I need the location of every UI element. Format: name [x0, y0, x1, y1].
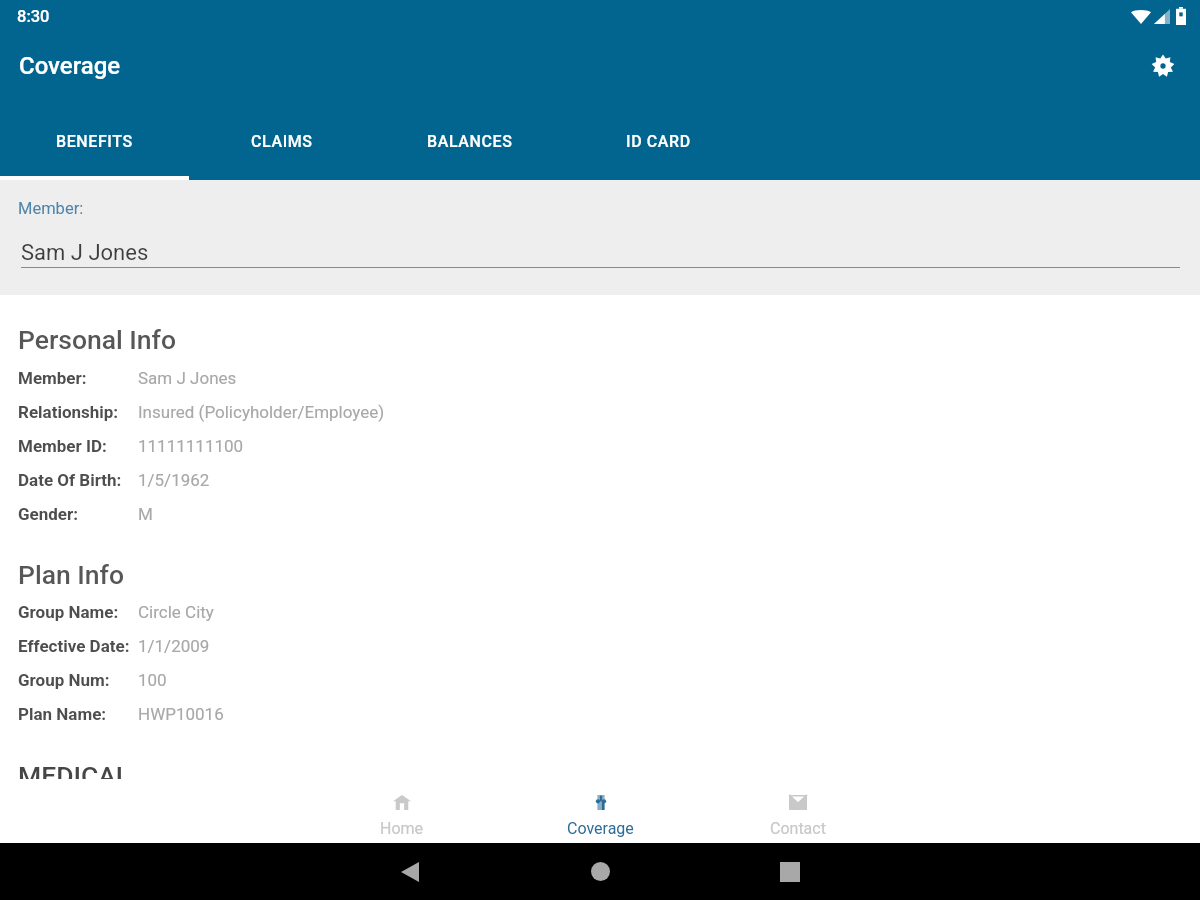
button[interactable]: BALANCES [376, 104, 564, 180]
staticText: Plan Info [18, 559, 124, 590]
button[interactable]: Coverage [501, 779, 699, 843]
staticText: Date Of Birth: [18, 470, 138, 490]
staticText: Member ID: [18, 436, 138, 456]
staticText: Circle City [138, 602, 214, 622]
button[interactable]: Back [315, 843, 505, 900]
staticText: 1/5/1962 [138, 470, 210, 490]
staticText: 1/1/2009 [138, 636, 210, 656]
staticText: Coverage [567, 819, 634, 838]
staticText: 11111111100 [138, 436, 244, 456]
button[interactable]: Home [505, 843, 695, 900]
staticText: Group Num: [18, 670, 138, 690]
button[interactable]: ID CARD [564, 104, 752, 180]
staticText: HWP10016 [138, 704, 224, 724]
button[interactable]: CLAIMS [188, 104, 376, 180]
staticText: Home [380, 819, 424, 838]
staticText: Plan Name: [18, 704, 138, 724]
staticText: Sam J Jones [138, 368, 237, 388]
staticText: CLAIMS [251, 132, 313, 151]
button[interactable]: Contact [699, 779, 897, 843]
staticText: Group Name: [18, 602, 138, 622]
staticText: 100 [138, 670, 167, 690]
staticText: Member: [18, 199, 84, 218]
staticText: ID CARD [626, 132, 691, 151]
staticText: Gender: [18, 504, 138, 524]
staticText: Sam J Jones [21, 240, 149, 266]
staticText: Relationship: [18, 402, 138, 422]
staticText: Insured (Policyholder/Employee) [138, 402, 385, 422]
staticText: M [138, 504, 153, 524]
staticText: BALANCES [427, 132, 513, 151]
staticText: 8:30 [17, 7, 50, 26]
button[interactable]: BENEFITS [0, 104, 188, 180]
staticText: Personal Info [18, 324, 177, 355]
staticText: BENEFITS [56, 132, 133, 151]
button[interactable]: Settings [1146, 49, 1180, 83]
staticText: Contact [770, 819, 826, 838]
button[interactable]: Recent apps [695, 843, 885, 900]
staticText: Member: [18, 368, 138, 388]
staticText: Coverage [19, 52, 121, 80]
staticText: Effective Date: [18, 636, 138, 656]
staticText: MEDICAL [18, 760, 131, 791]
button[interactable]: Home [303, 779, 501, 843]
